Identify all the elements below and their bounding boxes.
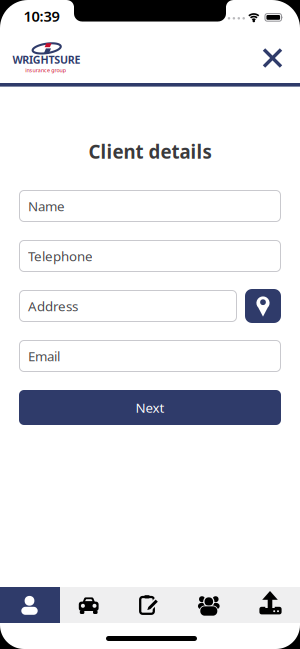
staticText: Client details [88,139,211,164]
button[interactable]: Telephone [19,240,281,272]
button[interactable]: Locate address [245,289,281,323]
button[interactable]: Client [0,587,60,623]
button[interactable]: Vehicle [60,587,120,623]
staticText: Name [28,197,65,215]
staticText: Email [28,347,60,365]
button[interactable]: Name [19,190,281,222]
button[interactable]: Address [19,290,237,322]
button[interactable]: Next [19,390,281,425]
staticText: insurance group [25,67,66,74]
button[interactable]: Contacts [180,587,240,623]
staticText: Address [28,297,78,315]
staticText: WRIGHTSURE [12,52,81,67]
button[interactable]: Close [254,40,290,75]
button[interactable]: Email [19,340,281,372]
staticText: Next [135,399,164,416]
button[interactable]: Upload [240,587,300,623]
staticText: 10:39 [23,6,59,26]
button[interactable]: Report [120,587,180,623]
staticText: Telephone [28,247,93,265]
